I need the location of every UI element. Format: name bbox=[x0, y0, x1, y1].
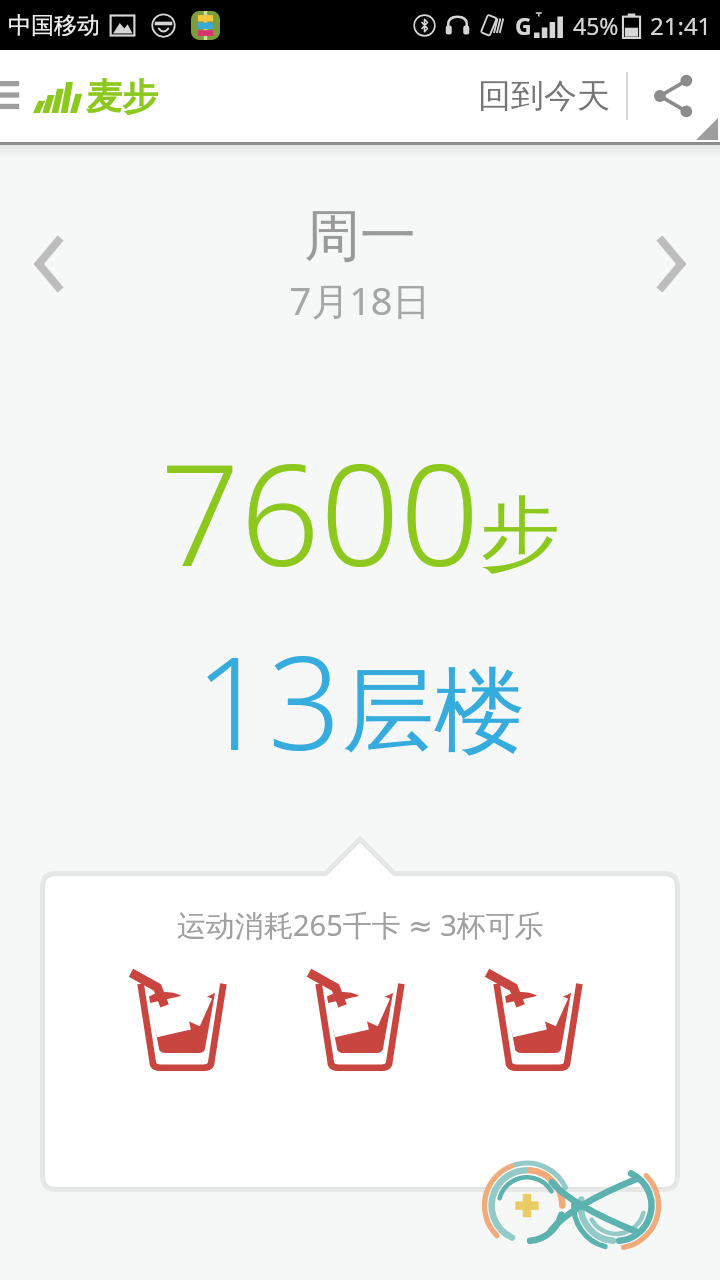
button[interactable]: Menu bbox=[0, 50, 30, 142]
button[interactable]: 13 bbox=[0, 613, 720, 787]
staticText: 45% bbox=[573, 10, 619, 41]
staticText: 7600 bbox=[160, 416, 480, 607]
staticText: 运动消耗265千卡 ≈ 3杯可乐 bbox=[177, 905, 544, 945]
staticText: 21:41 bbox=[650, 9, 712, 42]
staticText: 层楼 bbox=[342, 653, 526, 769]
staticText: G bbox=[515, 10, 532, 41]
staticText: 周一 bbox=[304, 201, 416, 272]
staticText: 步 bbox=[480, 484, 560, 585]
button[interactable]: Next day bbox=[624, 214, 720, 314]
staticText: 麦步 bbox=[86, 74, 158, 119]
staticText: 7月18日 bbox=[289, 274, 431, 326]
staticText: 13 bbox=[195, 613, 342, 787]
button[interactable]: 回到今天 bbox=[462, 55, 626, 137]
button[interactable]: Previous day bbox=[0, 214, 96, 314]
button[interactable]: Share bbox=[628, 52, 720, 140]
staticText: 中国移动 bbox=[8, 11, 100, 40]
button[interactable]: 7600 bbox=[0, 416, 720, 607]
staticText: 回到今天 bbox=[478, 75, 610, 117]
